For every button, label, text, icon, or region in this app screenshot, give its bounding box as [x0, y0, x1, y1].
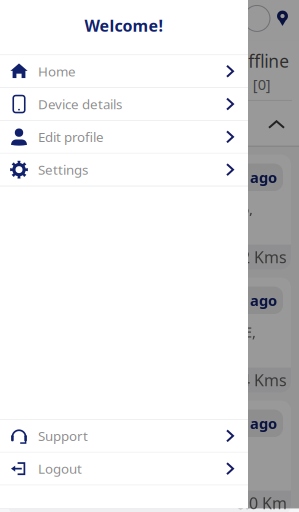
staticText: 14 seconds ago: [167, 167, 277, 187]
staticText: ADAJAN, SURAT: [19, 466, 124, 486]
button[interactable]: Support: [0, 420, 248, 453]
staticText: 0.0 Km: [236, 492, 287, 512]
staticText: 3.2 Kms: [228, 246, 287, 268]
staticText: GJ18EF9012: [18, 413, 107, 434]
staticText: Plot no 133, Nr. Ramdev Road 455,: [19, 199, 253, 218]
staticText: B-404, Nr Ring Road Junction, ST,: [19, 445, 244, 464]
staticText: [0]: [253, 74, 271, 94]
staticText: Edit profile: [38, 128, 104, 146]
staticText: [3]: [178, 74, 196, 94]
staticText: Device details: [38, 95, 122, 113]
staticText: Support: [38, 427, 88, 445]
staticText: 52 sec ago: [202, 413, 277, 433]
staticText: 37 sec ago: [202, 290, 277, 310]
staticText: Logout: [38, 460, 82, 477]
button[interactable]: Device details: [0, 88, 248, 121]
staticText: [0]: [103, 74, 121, 94]
staticText: Settings: [38, 161, 88, 178]
button[interactable]: Logout: [0, 453, 248, 485]
staticText: 1.4 Kms: [228, 369, 287, 391]
staticText: All: [28, 49, 47, 72]
staticText: Home: [38, 62, 76, 80]
button[interactable]: Settings: [0, 154, 248, 186]
staticText: [3]: [28, 74, 46, 94]
staticText: Shop 21, Nr NH-48 SIDE ROAD, DE,: [19, 322, 256, 341]
staticText: Welcome!: [84, 15, 163, 36]
staticText: GJ01AB1234: [18, 167, 111, 188]
staticText: Offline: [234, 49, 289, 72]
button[interactable]: Edit profile: [0, 121, 248, 154]
button[interactable]: Home: [0, 55, 248, 88]
